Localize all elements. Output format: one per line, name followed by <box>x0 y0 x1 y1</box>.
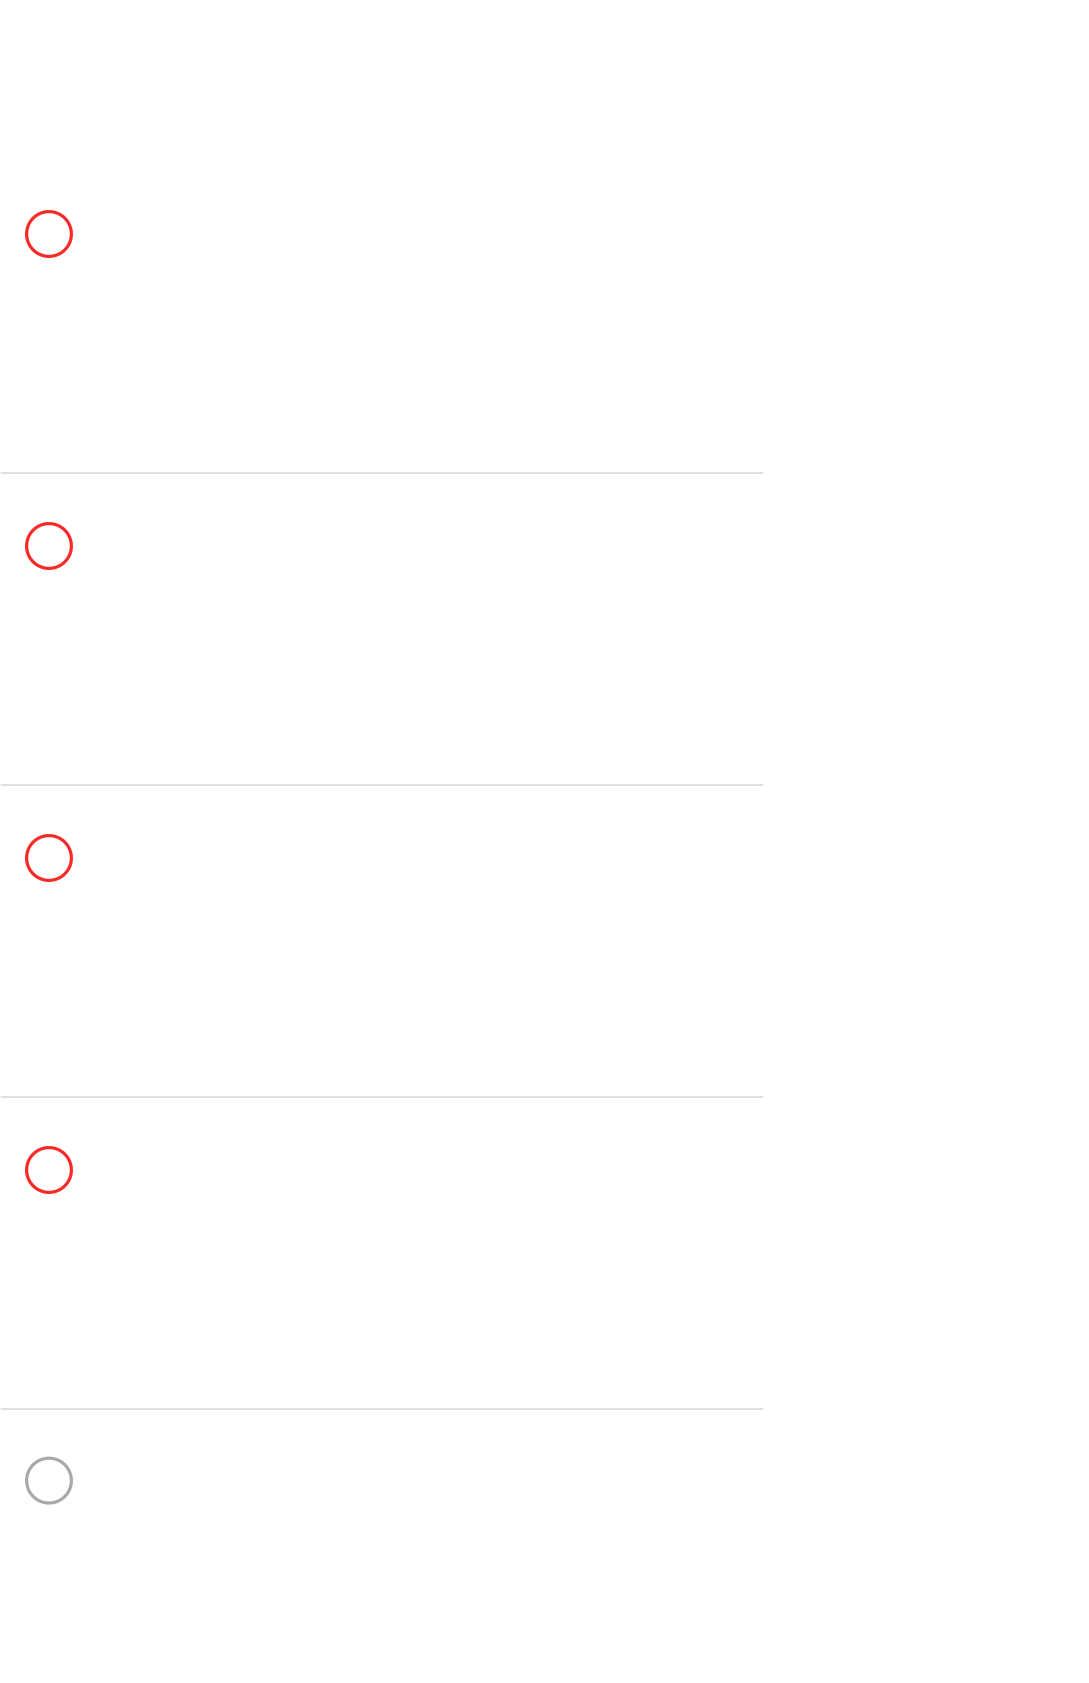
button[interactable]: Reminder <box>0 786 1089 1096</box>
button[interactable]: Reminder <box>0 162 1089 472</box>
button[interactable]: Reminder <box>0 1098 1089 1408</box>
button[interactable]: Complete reminder <box>25 522 73 570</box>
button[interactable]: Complete new reminder <box>25 1457 73 1505</box>
button[interactable]: Complete reminder <box>25 210 73 258</box>
button[interactable]: Complete reminder <box>25 1146 73 1194</box>
button[interactable]: Complete reminder <box>25 834 73 882</box>
button[interactable]: Reminder <box>0 474 1089 784</box>
button[interactable]: New reminder <box>0 1410 1089 1683</box>
